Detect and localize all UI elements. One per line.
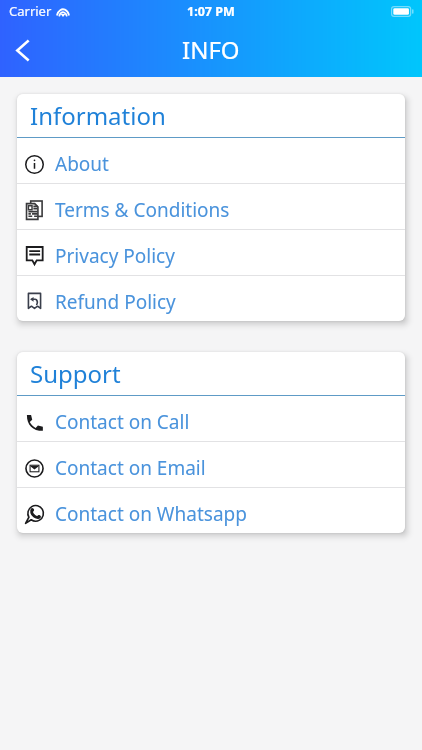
button[interactable]: Contact on Email: [17, 442, 405, 487]
staticText: Contact on Email: [55, 455, 206, 481]
button[interactable]: Contact on Whatsapp: [17, 488, 405, 533]
staticText: Contact on Call: [55, 409, 190, 435]
button[interactable]: Back: [0, 28, 44, 72]
button[interactable]: About: [17, 138, 405, 183]
staticText: Support: [30, 357, 121, 390]
staticText: Carrier: [9, 2, 52, 20]
staticText: About: [55, 151, 109, 177]
button[interactable]: Privacy Policy: [17, 230, 405, 275]
staticText: Contact on Whatsapp: [55, 501, 247, 527]
staticText: Terms & Conditions: [55, 197, 230, 223]
staticText: Privacy Policy: [55, 243, 175, 269]
staticText: Refund Policy: [55, 289, 176, 315]
staticText: Information: [30, 99, 166, 132]
staticText: 1:07 PM: [187, 3, 235, 20]
button[interactable]: Contact on Call: [17, 396, 405, 441]
button[interactable]: Terms & Conditions: [17, 184, 405, 229]
button[interactable]: Refund Policy: [17, 276, 405, 321]
staticText: INFO: [182, 33, 240, 66]
